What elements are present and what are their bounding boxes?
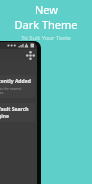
button[interactable]: Default Search Engine: [0, 103, 35, 122]
staticText: Recently Added: [0, 78, 31, 85]
button[interactable]: Recently Added: [0, 75, 35, 98]
staticText: New: [35, 2, 58, 17]
staticText: To Suit Your Taste: [21, 34, 71, 42]
staticText: Shows the newest entries: [0, 86, 32, 95]
staticText: Default Search Engine: [0, 106, 32, 119]
button[interactable]: More options: [26, 51, 35, 60]
staticText: Dark Theme: [14, 17, 78, 32]
